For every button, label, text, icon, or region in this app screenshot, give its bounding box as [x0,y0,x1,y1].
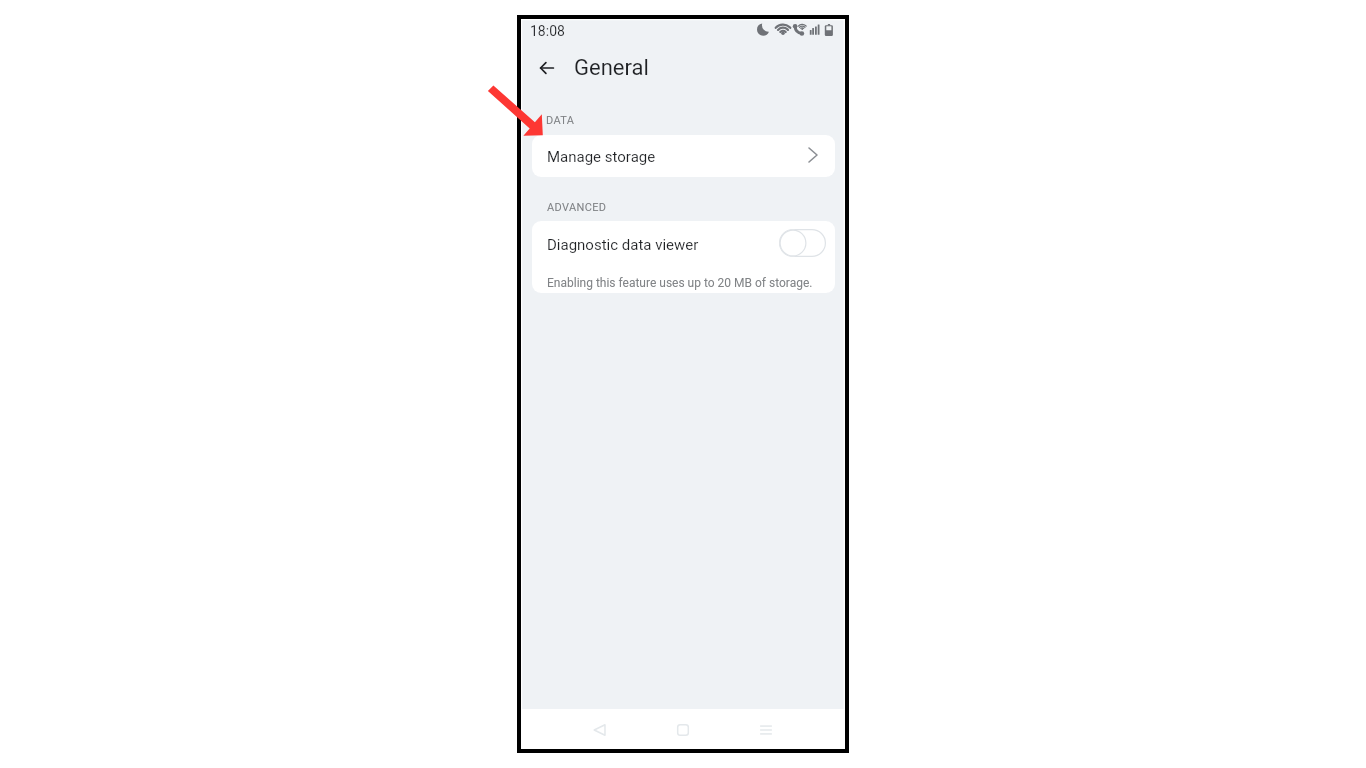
button[interactable]: Manage storage [532,135,835,177]
button[interactable]: Home [668,715,698,745]
button[interactable]: Back [585,715,615,745]
button[interactable]: Navigate up [529,50,565,86]
staticText: Diagnostic data viewer [547,236,699,254]
staticText: Manage storage [547,148,656,166]
staticText: Enabling this feature uses up to 20 MB o… [547,276,813,290]
staticText: General [574,55,649,81]
button[interactable]: Diagnostic data viewer, off [776,224,829,262]
staticText: 18:08 [530,23,565,39]
staticText: DATA [546,114,575,127]
button[interactable]: Diagnostic data viewer [532,221,772,267]
staticText: ADVANCED [547,201,607,214]
button[interactable]: Recent apps [751,715,781,745]
